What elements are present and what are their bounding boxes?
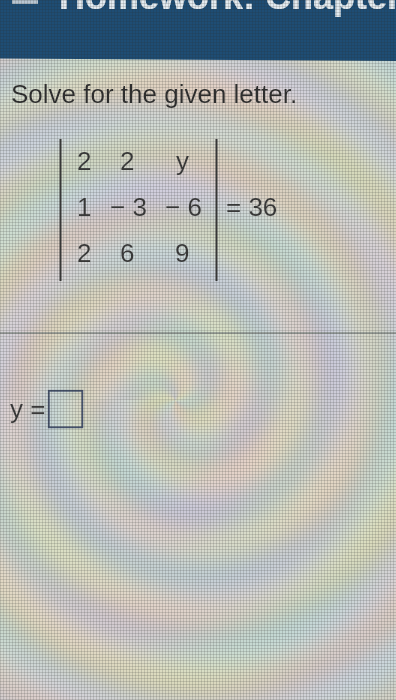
button[interactable] [0, 0, 396, 700]
staticText: Homework: Chapter [59, 0, 396, 16]
staticText: 9 [175, 238, 190, 267]
button[interactable]: Open navigation menu [6, 0, 44, 6]
staticText: 2 [120, 146, 135, 175]
staticText: y = [10, 394, 46, 423]
staticText: 2 [77, 146, 92, 175]
staticText: 1 [77, 192, 92, 221]
staticText: Solve for the given letter. [11, 79, 298, 108]
staticText: 6 [120, 238, 135, 267]
staticText: − 6 [165, 192, 202, 221]
staticText: y [176, 146, 189, 175]
staticText: 2 [77, 238, 92, 267]
button[interactable]: Answer input for y [48, 390, 83, 428]
staticText: − 3 [110, 192, 147, 221]
staticText: = 36 [226, 192, 278, 221]
